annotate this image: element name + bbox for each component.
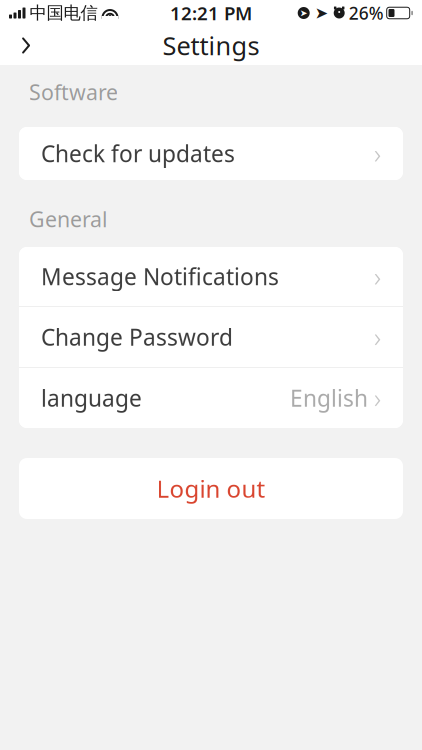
staticText: 中国电信 bbox=[29, 2, 97, 24]
staticText: › bbox=[374, 259, 381, 294]
button[interactable]: Check for updates bbox=[19, 127, 403, 180]
button[interactable]: Back bbox=[6, 26, 46, 65]
staticText: Settings bbox=[162, 29, 259, 62]
staticText: 26% bbox=[349, 1, 384, 24]
staticText: › bbox=[374, 136, 381, 171]
staticText: Message Notifications bbox=[41, 261, 279, 291]
staticText: › bbox=[374, 319, 381, 355]
staticText: General bbox=[29, 205, 108, 233]
staticText: ➤ bbox=[300, 8, 308, 18]
staticText: Change Password bbox=[41, 322, 233, 352]
button[interactable]: Change Password bbox=[19, 307, 403, 367]
staticText: Check for updates bbox=[41, 138, 235, 168]
staticText: English bbox=[290, 383, 368, 413]
staticText: › bbox=[374, 380, 381, 416]
button[interactable]: language bbox=[19, 368, 403, 428]
staticText: 12:21 PM bbox=[170, 1, 252, 25]
button[interactable]: Message Notifications bbox=[19, 247, 403, 306]
button[interactable]: Login out bbox=[0, 458, 422, 519]
staticText: Software bbox=[29, 78, 118, 106]
staticText: Login out bbox=[156, 473, 265, 504]
staticText: language bbox=[41, 383, 142, 413]
staticText: ➤ bbox=[315, 4, 328, 22]
